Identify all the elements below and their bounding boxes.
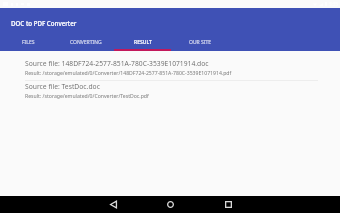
staticText: Source file: TestDoc.doc [25, 82, 100, 91]
staticText: DOC to PDF Converter [11, 19, 77, 27]
staticText: CONVERTING [70, 39, 102, 46]
staticText: RESULT [134, 39, 152, 46]
staticText: Result: /storage/emulated/0/Converter/14… [25, 70, 232, 77]
staticText: Source file: 148DF724-2577-851A-780C-353… [25, 59, 209, 68]
button[interactable]: CONVERTING [57, 37, 114, 51]
button[interactable]: FILES [0, 37, 57, 51]
button[interactable]: RESULT [114, 37, 171, 51]
button[interactable]: OUR SITE [171, 37, 228, 51]
staticText: OUR SITE [189, 39, 211, 46]
button[interactable]: Back [98, 196, 128, 213]
staticText: FILES [22, 39, 35, 46]
button[interactable]: Source file: 148DF724-2577-851A-780C-353… [0, 51, 340, 81]
button[interactable]: Recent apps [213, 196, 243, 213]
button[interactable]: Home [155, 196, 185, 213]
button[interactable]: Source file: TestDoc.doc [0, 81, 340, 104]
staticText: Result: /storage/emulated/0/Converter/Te… [25, 93, 149, 100]
